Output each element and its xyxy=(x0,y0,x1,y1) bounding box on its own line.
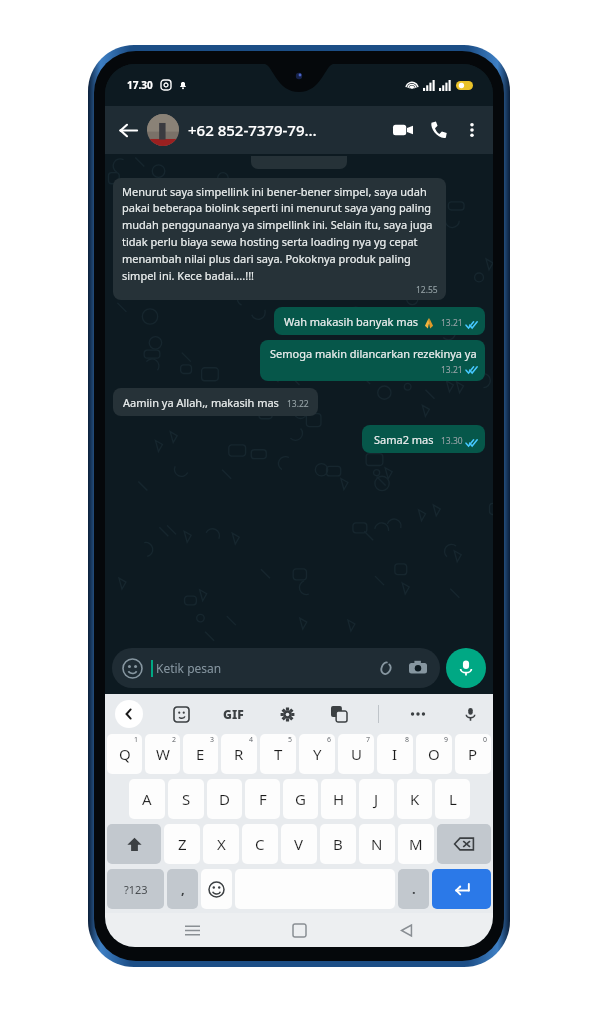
button[interactable]: , xyxy=(167,869,198,909)
button[interactable]: Stickers xyxy=(168,701,194,727)
staticText: 13.21 xyxy=(441,317,463,329)
staticText: Ketik pesan xyxy=(156,660,222,676)
button[interactable]: M xyxy=(398,824,434,864)
button[interactable]: Camera xyxy=(407,657,429,679)
staticText: 7 xyxy=(366,735,371,745)
button[interactable]: Ketik pesan xyxy=(112,648,440,688)
staticText: 0 xyxy=(483,735,488,745)
staticText: H xyxy=(333,789,345,809)
button[interactable]: . xyxy=(398,869,429,909)
staticText: C xyxy=(255,834,265,854)
button[interactable]: Recents xyxy=(172,913,212,947)
button[interactable]: ?123 xyxy=(107,869,164,909)
staticText: F xyxy=(259,789,267,809)
staticText: , xyxy=(181,880,185,898)
staticText: D xyxy=(219,789,230,809)
button[interactable]: Backspace xyxy=(437,824,491,864)
staticText: J xyxy=(374,789,379,809)
button[interactable]: Voice message xyxy=(446,648,486,688)
button[interactable]: More options xyxy=(457,115,487,145)
staticText: E xyxy=(196,744,205,764)
button[interactable]: Enter xyxy=(432,869,491,909)
button[interactable]: +62 852-7379-79… xyxy=(188,120,385,140)
staticText: Wah makasih banyak mas xyxy=(284,314,419,329)
button[interactable]: Back xyxy=(111,113,145,147)
staticText: Z xyxy=(178,834,187,854)
staticText: 2 xyxy=(172,735,177,745)
button[interactable]: G xyxy=(283,779,318,819)
button[interactable]: N xyxy=(359,824,395,864)
button[interactable]: Back xyxy=(115,700,143,728)
staticText: +62 852-7379-79… xyxy=(188,120,317,140)
button[interactable]: P xyxy=(455,734,491,774)
button[interactable]: Settings xyxy=(274,701,300,727)
button[interactable]: H xyxy=(321,779,356,819)
button[interactable]: V xyxy=(281,824,317,864)
button[interactable]: I xyxy=(377,734,413,774)
button[interactable]: Back xyxy=(386,913,426,947)
staticText: 6 xyxy=(327,735,332,745)
button[interactable]: Shift xyxy=(107,824,161,864)
staticText: W xyxy=(156,744,170,764)
button[interactable]: C xyxy=(242,824,278,864)
button[interactable]: L xyxy=(435,779,470,819)
button[interactable]: GIF xyxy=(219,702,248,726)
button[interactable]: Wah makasih banyak mas xyxy=(274,307,485,335)
button[interactable]: X xyxy=(203,824,239,864)
staticText: Sama2 mas xyxy=(374,432,434,447)
button[interactable]: Translate xyxy=(326,701,352,727)
button[interactable]: Q xyxy=(107,734,142,774)
button[interactable]: W xyxy=(145,734,180,774)
staticText: K xyxy=(410,789,420,809)
button[interactable]: Emoji xyxy=(201,869,232,909)
button[interactable]: More xyxy=(405,701,431,727)
button[interactable]: S xyxy=(168,779,204,819)
staticText: 13.22 xyxy=(287,398,309,410)
staticText: 12.55 xyxy=(416,284,438,296)
staticText: Menurut saya simpellink ini bener-bener … xyxy=(122,184,438,284)
staticText: ?123 xyxy=(124,882,148,897)
button[interactable]: J xyxy=(359,779,394,819)
staticText: T xyxy=(274,744,283,764)
staticText: 13.30 xyxy=(441,435,463,447)
button[interactable]: Menurut saya simpellink ini bener-bener … xyxy=(113,178,446,300)
button[interactable]: K xyxy=(397,779,432,819)
staticText: A xyxy=(142,789,152,809)
staticText: 8 xyxy=(405,735,410,745)
staticText: 13.21 xyxy=(441,364,463,376)
button[interactable]: Sama2 mas xyxy=(362,425,485,453)
button[interactable]: D xyxy=(207,779,242,819)
button[interactable]: A xyxy=(129,779,165,819)
staticText: 1 xyxy=(134,735,139,745)
button[interactable]: Call xyxy=(421,112,457,148)
button[interactable]: Aamiin ya Allah,, makasih mas xyxy=(113,388,318,416)
button[interactable]: Semoga makin dilancarkan rezekinya ya xyxy=(260,340,485,381)
button[interactable]: Attach xyxy=(374,657,396,679)
button[interactable]: E xyxy=(183,734,218,774)
button[interactable]: Home xyxy=(279,913,319,947)
staticText: 5 xyxy=(288,735,293,745)
staticText: Y xyxy=(313,744,322,764)
staticText: I xyxy=(392,744,398,764)
staticText: 3 xyxy=(210,735,215,745)
staticText: Aamiin ya Allah,, makasih mas xyxy=(123,395,279,410)
staticText: M xyxy=(409,834,423,854)
staticText: . xyxy=(412,880,416,898)
staticText: N xyxy=(371,834,383,854)
button[interactable]: Y xyxy=(299,734,335,774)
button[interactable]: Video call xyxy=(385,112,421,148)
button[interactable]: T xyxy=(260,734,296,774)
button[interactable]: U xyxy=(338,734,374,774)
button[interactable]: O xyxy=(416,734,452,774)
staticText: G xyxy=(295,789,306,809)
button[interactable]: R xyxy=(221,734,257,774)
button[interactable]: F xyxy=(245,779,280,819)
button[interactable]: Z xyxy=(164,824,200,864)
staticText: Semoga makin dilancarkan rezekinya ya xyxy=(270,346,477,361)
button[interactable]: Voice input xyxy=(457,701,483,727)
staticText: 9 xyxy=(444,735,449,745)
button[interactable]: B xyxy=(320,824,356,864)
staticText: P xyxy=(468,744,478,764)
button[interactable] xyxy=(147,114,179,146)
